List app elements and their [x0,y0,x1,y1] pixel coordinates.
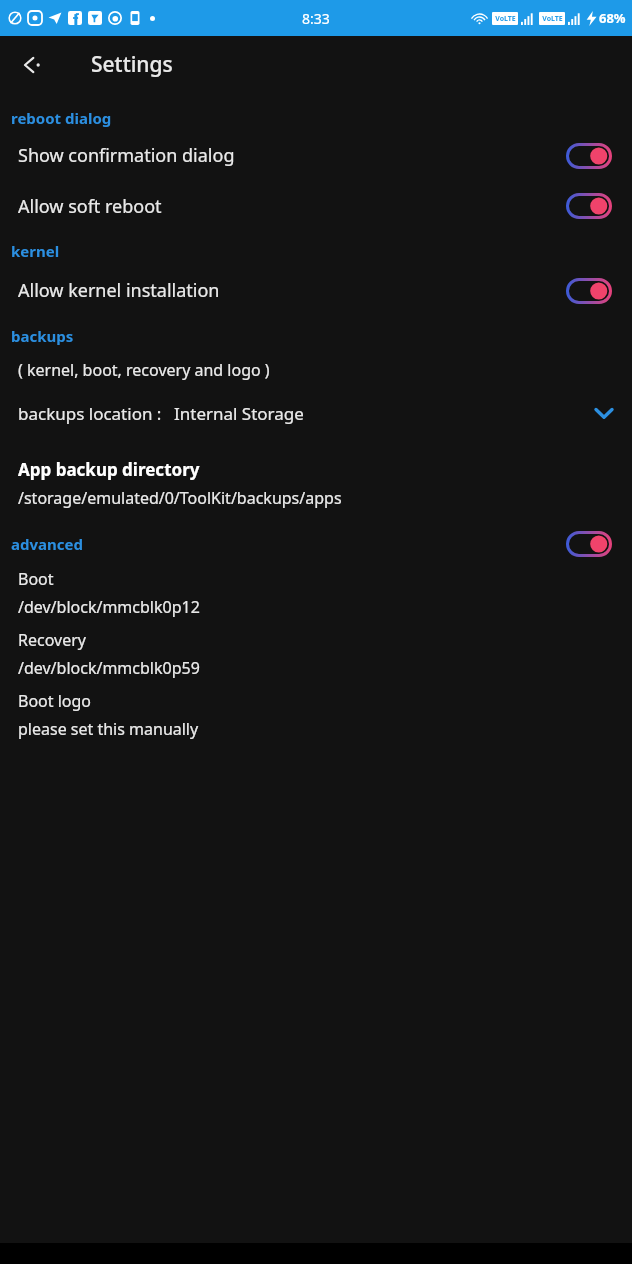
staticText: please set this manually [18,718,199,740]
button[interactable]: Show confirmation dialog [0,131,632,180]
staticText: backups [11,326,74,346]
staticText: kernel [11,241,60,261]
staticText: 68% [599,9,626,27]
button[interactable]: Back [10,43,54,87]
staticText: Boot [18,568,54,590]
button[interactable]: Boot [0,568,632,618]
staticText: VoLTE [542,14,563,24]
button[interactable]: Toggle [566,531,612,557]
staticText: ( kernel, boot, recovery and logo ) [18,359,270,381]
button[interactable]: backups location : [0,391,632,435]
button[interactable]: Toggle [566,193,612,219]
staticText: reboot dialog [11,108,112,128]
button[interactable]: Toggle [566,143,612,169]
staticText: Show confirmation dialog [18,143,235,168]
staticText: 8:33 [302,9,330,28]
button[interactable]: Allow kernel installation [0,264,632,317]
staticText: Recovery [18,629,86,651]
staticText: Settings [91,50,173,79]
button[interactable]: Toggle [566,278,612,304]
staticText: /dev/block/mmcblk0p59 [18,657,200,679]
staticText: backups location : [18,402,162,425]
staticText: Allow kernel installation [18,278,220,303]
staticText: Boot logo [18,690,92,712]
button[interactable]: Allow soft reboot [0,180,632,232]
staticText: App backup directory [18,458,200,481]
staticText: /storage/emulated/0/ToolKit/backups/apps [18,487,342,509]
button[interactable]: advanced [0,525,632,563]
button[interactable]: Boot logo [0,690,632,740]
staticText: VoLTE [495,14,516,24]
button[interactable]: Recovery [0,629,632,679]
staticText: Internal Storage [174,402,304,425]
staticText: /dev/block/mmcblk0p12 [18,596,200,618]
staticText: advanced [11,534,83,554]
staticText: Allow soft reboot [18,194,162,219]
button[interactable]: App backup directory [0,458,632,509]
